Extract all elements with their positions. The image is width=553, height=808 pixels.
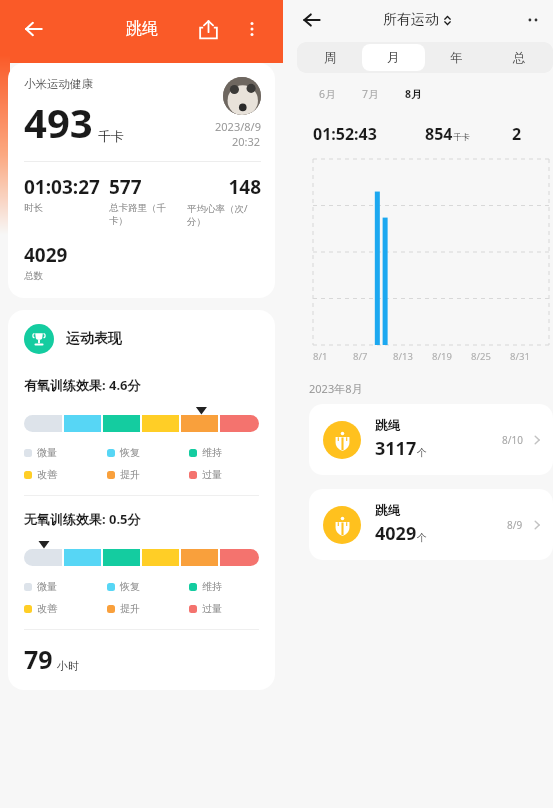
staticText: 8/13 xyxy=(393,350,413,363)
button[interactable]: 分享 xyxy=(189,10,227,48)
staticText: 跳绳 xyxy=(126,19,158,39)
button[interactable]: 小米运动健康 xyxy=(8,63,275,298)
button[interactable]: 更多 xyxy=(521,5,551,35)
staticText: 微量 xyxy=(37,580,57,593)
staticText: 01:52:43 xyxy=(313,123,377,145)
staticText: 提升 xyxy=(120,468,140,481)
staticText: 148 xyxy=(187,174,261,200)
staticText: 平均心率（次/ 分） xyxy=(187,202,248,228)
staticText: 月 xyxy=(387,50,400,66)
button[interactable]: 返回 xyxy=(295,3,329,37)
staticText: 577 xyxy=(109,174,187,200)
button[interactable]: 跳绳 xyxy=(309,404,553,475)
staticText: 改善 xyxy=(37,602,57,615)
staticText: 跳绳 xyxy=(375,503,400,519)
staticText: 维持 xyxy=(202,446,222,459)
staticText: 2 xyxy=(512,123,522,145)
staticText: 854 xyxy=(425,123,453,145)
button[interactable]: 周 xyxy=(299,44,362,71)
staticText: 恢复 xyxy=(120,446,140,459)
button[interactable]: 月 xyxy=(362,44,425,71)
button[interactable]: 7月 xyxy=(360,87,381,101)
staticText: 8/31 xyxy=(510,350,530,363)
button[interactable]: 总 xyxy=(488,44,551,71)
button[interactable]: 6月 xyxy=(317,87,338,101)
button[interactable]: 8月 xyxy=(403,87,424,101)
staticText: 01:03:27 xyxy=(24,174,109,200)
staticText: 过量 xyxy=(202,468,222,481)
staticText: 小时 xyxy=(57,659,79,673)
button[interactable]: 返回 xyxy=(14,9,54,49)
button[interactable]: 年 xyxy=(425,44,488,71)
staticText: 小米运动健康 xyxy=(24,77,93,91)
staticText: 微量 xyxy=(37,446,57,459)
staticText: 4029 xyxy=(375,521,417,546)
staticText: 8/1 xyxy=(313,350,328,363)
button[interactable]: 更多 xyxy=(233,10,271,48)
staticText: 总 xyxy=(513,50,526,66)
staticText: 改善 xyxy=(37,468,57,481)
staticText: 8月 xyxy=(405,87,422,101)
staticText: 过量 xyxy=(202,602,222,615)
staticText: 提升 xyxy=(120,602,140,615)
staticText: 所有运动 xyxy=(383,11,439,29)
staticText: 2023/8/9 xyxy=(215,119,261,134)
staticText: 总数 xyxy=(24,270,43,282)
staticText: 8/19 xyxy=(432,350,452,363)
staticText: 8/10 xyxy=(502,433,523,447)
staticText: 2023年8月 xyxy=(309,381,363,396)
staticText: 7月 xyxy=(362,87,379,101)
staticText: 维持 xyxy=(202,580,222,593)
staticText: 79 xyxy=(24,642,53,676)
staticText: 有氧训练效果: 4.6分 xyxy=(24,376,141,394)
staticText: 8/25 xyxy=(471,350,491,363)
staticText: 总卡路里（千 卡） xyxy=(109,202,166,227)
staticText: 8/7 xyxy=(353,350,368,363)
staticText: 周 xyxy=(324,50,337,66)
staticText: 20:32 xyxy=(232,134,261,149)
staticText: 运动表现 xyxy=(66,330,122,348)
staticText: 493 xyxy=(24,95,93,149)
staticText: 千卡 xyxy=(98,128,124,144)
staticText: 8/9 xyxy=(507,518,523,532)
staticText: 跳绳 xyxy=(375,418,400,434)
button[interactable]: 跳绳 xyxy=(309,489,553,560)
staticText: 千卡 xyxy=(453,132,470,143)
staticText: 年 xyxy=(450,50,463,66)
staticText: 恢复 xyxy=(120,580,140,593)
staticText: 无氧训练效果: 0.5分 xyxy=(24,510,141,528)
staticText: 时长 xyxy=(24,202,43,214)
button[interactable]: 所有运动 xyxy=(383,11,453,29)
staticText: 6月 xyxy=(319,87,336,101)
button[interactable]: 运动表现 xyxy=(8,310,275,690)
staticText: 3117 xyxy=(375,436,417,461)
staticText: 个 xyxy=(417,446,427,459)
staticText: 4029 xyxy=(24,242,108,268)
staticText: 个 xyxy=(417,531,427,544)
